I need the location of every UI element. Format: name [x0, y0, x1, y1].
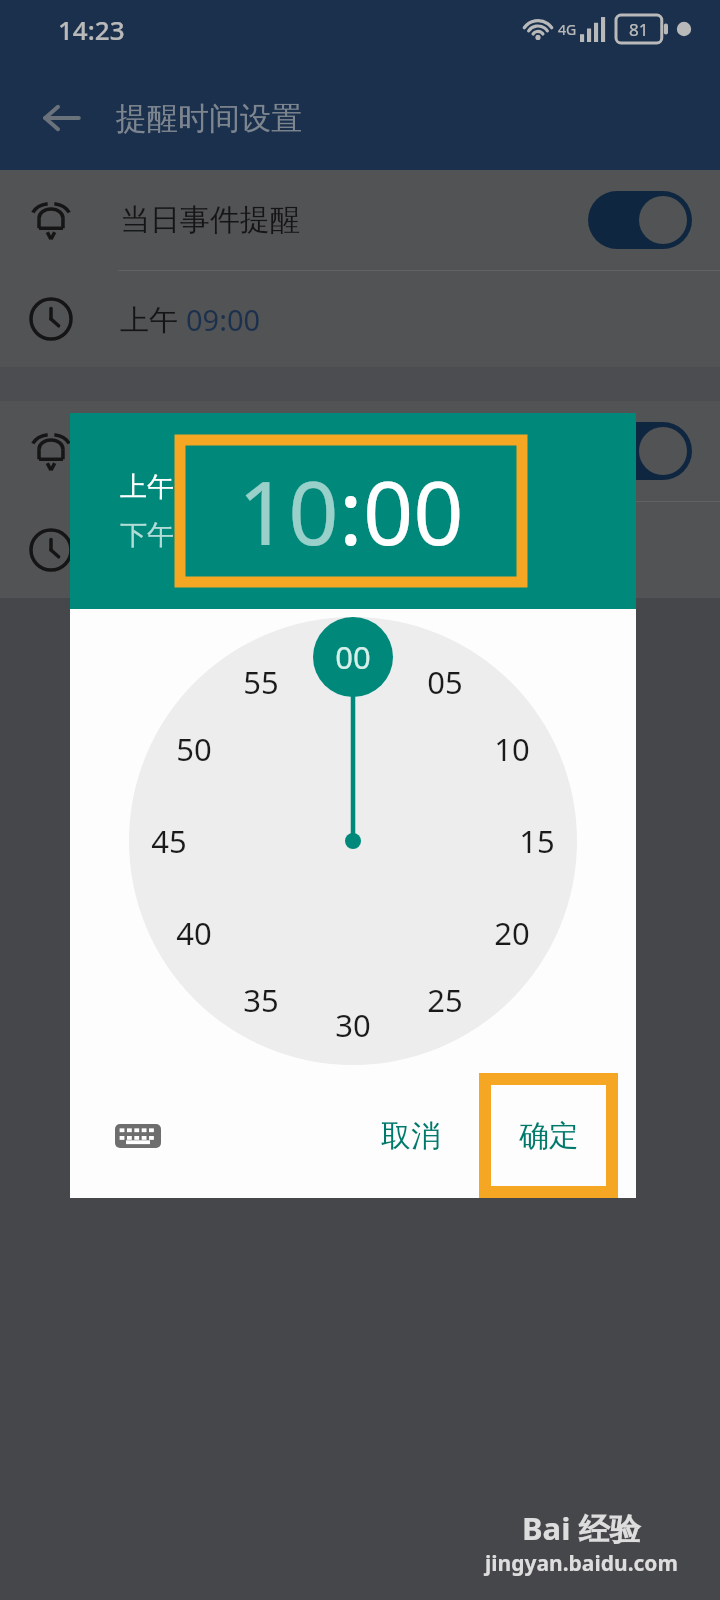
button[interactable]: 05: [413, 658, 477, 706]
staticText: 当日事件提醒: [120, 201, 300, 239]
button[interactable]: 45: [137, 817, 201, 865]
staticText: 10: [494, 728, 530, 770]
staticText: 45: [151, 820, 187, 862]
staticText: 14:23: [58, 12, 125, 47]
staticText: 35: [243, 979, 279, 1021]
button[interactable]: 15: [505, 817, 569, 865]
button[interactable]: 返回: [34, 90, 90, 146]
staticText: 20: [494, 912, 530, 954]
staticText: 50: [176, 728, 212, 770]
staticText: 30: [335, 1004, 371, 1046]
button[interactable]: 取消: [359, 1103, 463, 1169]
button[interactable]: 10: [238, 451, 339, 571]
staticText: 上午: [120, 299, 186, 339]
staticText: jingyan.baidu.com: [485, 1549, 678, 1578]
staticText: 15: [519, 820, 555, 862]
button[interactable]: 35: [229, 976, 293, 1024]
button[interactable]: 键盘输入: [110, 1108, 166, 1164]
staticText: 55: [243, 661, 279, 703]
staticText: 25: [427, 979, 463, 1021]
button[interactable]: 55: [229, 658, 293, 706]
button[interactable]: 下午: [120, 518, 174, 552]
button[interactable]: 上午: [120, 470, 174, 504]
button[interactable]: 00: [363, 451, 464, 571]
button[interactable]: 确定: [479, 1073, 618, 1198]
button[interactable]: 20: [480, 909, 544, 957]
staticText: 取消: [381, 1117, 441, 1155]
staticText: 09:00: [186, 300, 261, 339]
button[interactable]: [0, 502, 720, 598]
button[interactable]: 当日事件提醒: [0, 170, 720, 270]
button[interactable]: 30: [321, 1001, 385, 1049]
button[interactable]: 40: [162, 909, 226, 957]
staticText: 40: [176, 912, 212, 954]
staticText: 05: [427, 661, 463, 703]
button[interactable]: 50: [162, 725, 226, 773]
button[interactable]: 25: [413, 976, 477, 1024]
staticText: Bai 经验: [522, 1507, 641, 1549]
button[interactable]: 开关: [588, 422, 692, 480]
button[interactable]: 00: [321, 633, 385, 681]
staticText: 提醒时间设置: [116, 99, 302, 138]
button[interactable]: 开关: [588, 191, 692, 249]
button[interactable]: 10: [480, 725, 544, 773]
staticText: 00: [335, 636, 371, 678]
staticText: 下午: [120, 518, 174, 552]
staticText: 确定: [519, 1117, 579, 1155]
staticText: 4G: [558, 20, 577, 39]
button[interactable]: 开关: [0, 401, 720, 501]
button[interactable]: 上午: [0, 271, 720, 367]
staticText: 81: [629, 18, 649, 41]
staticText: :: [339, 451, 363, 571]
staticText: 上午: [120, 470, 174, 504]
